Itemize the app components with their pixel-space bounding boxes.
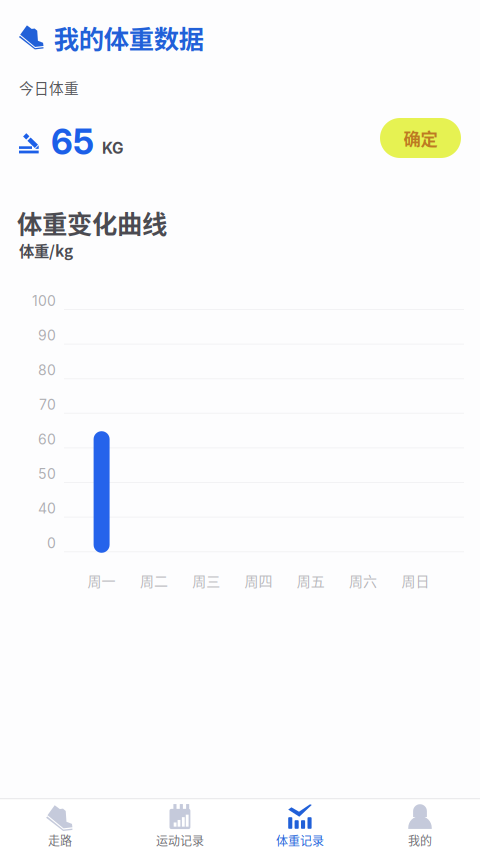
staticText: 我的 [408, 832, 432, 849]
staticText: 走路 [48, 832, 72, 849]
staticText: 0 [47, 535, 56, 551]
staticText: 65 [51, 121, 94, 163]
staticText: 90 [38, 327, 56, 344]
staticText: 运动记录 [156, 832, 204, 849]
staticText: 周五 [297, 570, 325, 591]
staticText: 周四 [244, 570, 272, 591]
staticText: 80 [38, 362, 56, 378]
staticText: 体重变化曲线 [17, 204, 167, 241]
staticText: 今日体重 [19, 77, 79, 98]
staticText: 周六 [349, 570, 377, 591]
staticText: 体重/kg [19, 239, 73, 261]
staticText: KG [102, 139, 124, 158]
staticText: 周日 [401, 570, 429, 591]
staticText: 50 [38, 465, 56, 482]
staticText: 70 [39, 396, 56, 413]
staticText: 我的体重数据 [54, 19, 204, 56]
staticText: 周三 [192, 570, 220, 591]
staticText: 确定 [403, 125, 437, 151]
staticText: 100 [32, 292, 56, 309]
staticText: 周二 [140, 570, 168, 591]
staticText: 40 [38, 500, 56, 517]
button[interactable]: 走路 [0, 796, 120, 853]
staticText: 体重记录 [276, 832, 324, 849]
staticText: 60 [38, 431, 56, 448]
staticText: 周一 [88, 570, 116, 591]
button[interactable]: 体重记录 [240, 796, 360, 853]
button[interactable]: 确定 [380, 118, 461, 158]
button[interactable]: 运动记录 [120, 796, 240, 853]
button[interactable]: 我的 [360, 796, 480, 853]
